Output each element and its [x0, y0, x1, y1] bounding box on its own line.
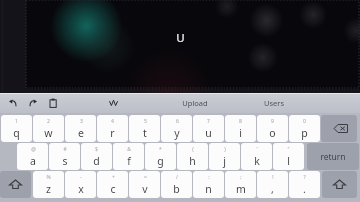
staticText: t [143, 126, 147, 140]
staticText: v [142, 182, 148, 196]
staticText: 4 [111, 118, 114, 125]
button[interactable]: Paste [46, 96, 60, 110]
staticText: a [30, 154, 36, 168]
staticText: ; [240, 174, 242, 181]
button[interactable]: 2 [33, 115, 64, 142]
staticText: @ [31, 146, 36, 153]
staticText: q [13, 126, 20, 140]
staticText: " [287, 146, 290, 153]
button[interactable]: 7 [193, 115, 224, 142]
button[interactable]: $ [81, 143, 112, 170]
button[interactable]: Formula [107, 96, 121, 110]
button[interactable]: return [307, 143, 359, 170]
staticText: 2 [47, 118, 50, 125]
staticText: x [78, 182, 84, 196]
button[interactable]: " [273, 143, 304, 170]
button[interactable]: : [193, 171, 224, 198]
staticText: $ [95, 146, 98, 153]
staticText: 5 [144, 118, 147, 125]
staticText: 0 [303, 118, 306, 125]
staticText: i [239, 126, 242, 140]
staticText: Users [264, 98, 284, 108]
staticText: o [269, 126, 276, 140]
button[interactable]: ) [209, 143, 240, 170]
staticText: y [174, 126, 180, 140]
button[interactable]: - [65, 171, 96, 198]
staticText: - [80, 174, 82, 181]
button[interactable]: = [129, 171, 160, 198]
staticText: ( [192, 146, 194, 153]
button[interactable]: 5 [129, 115, 160, 142]
button[interactable]: Upload [178, 95, 212, 111]
button[interactable]: 0 [289, 115, 320, 142]
staticText: / [176, 174, 178, 181]
button[interactable]: % [33, 171, 64, 198]
staticText: n [205, 182, 212, 196]
button[interactable]: / [161, 171, 192, 198]
button[interactable]: # [49, 143, 80, 170]
button[interactable]: ' [241, 143, 272, 170]
staticText: & [127, 146, 131, 153]
staticText: f [127, 154, 131, 168]
button[interactable]: Undo [6, 96, 20, 110]
staticText: p [301, 126, 308, 140]
button[interactable]: Backspace [321, 115, 357, 142]
staticText: j [223, 154, 226, 168]
staticText: 8 [239, 118, 242, 125]
button[interactable]: 6 [161, 115, 192, 142]
staticText: % [46, 174, 51, 181]
button[interactable]: 4 [97, 115, 128, 142]
staticText: + [112, 174, 115, 181]
button[interactable]: + [97, 171, 128, 198]
staticText: Upload [182, 98, 208, 108]
staticText: g [157, 154, 164, 168]
button[interactable]: @ [17, 143, 48, 170]
staticText: # [63, 146, 67, 153]
staticText: e [78, 126, 84, 140]
staticText: m [236, 182, 246, 196]
button[interactable]: & [113, 143, 144, 170]
staticText: ) [224, 146, 226, 153]
button[interactable]: 8 [225, 115, 256, 142]
staticText: 9 [271, 118, 274, 125]
button[interactable]: Users [260, 95, 288, 111]
staticText: w [44, 126, 53, 140]
staticText: l [287, 154, 290, 168]
staticText: b [173, 182, 180, 196]
staticText: d [93, 154, 100, 168]
button[interactable]: ? [289, 171, 320, 198]
staticText: 7 [207, 118, 210, 125]
staticText: k [254, 154, 260, 168]
button[interactable]: ! [257, 171, 288, 198]
staticText: h [189, 154, 196, 168]
staticText: = [144, 174, 147, 181]
button[interactable]: ( [177, 143, 208, 170]
staticText: . [303, 182, 306, 196]
staticText: 6 [176, 118, 179, 125]
staticText: U [176, 30, 185, 46]
staticText: ' [256, 146, 258, 153]
button[interactable]: Redo [26, 96, 40, 110]
staticText: * [159, 146, 162, 153]
staticText: : [208, 174, 210, 181]
staticText: s [62, 154, 68, 168]
staticText: r [110, 126, 115, 140]
staticText: 3 [80, 118, 83, 125]
staticText: ? [303, 174, 306, 181]
staticText: c [110, 182, 116, 196]
button[interactable]: 9 [257, 115, 288, 142]
button[interactable]: * [145, 143, 176, 170]
button[interactable]: 1 [1, 115, 32, 142]
staticText: z [46, 182, 51, 196]
staticText: return [320, 151, 346, 163]
staticText: ! [272, 174, 274, 181]
staticText: , [271, 182, 274, 196]
button[interactable]: 3 [65, 115, 96, 142]
button[interactable]: ; [225, 171, 256, 198]
staticText: u [205, 126, 212, 140]
button[interactable]: Shift [0, 171, 31, 198]
button[interactable]: Shift [322, 171, 357, 198]
staticText: 1 [15, 118, 18, 125]
